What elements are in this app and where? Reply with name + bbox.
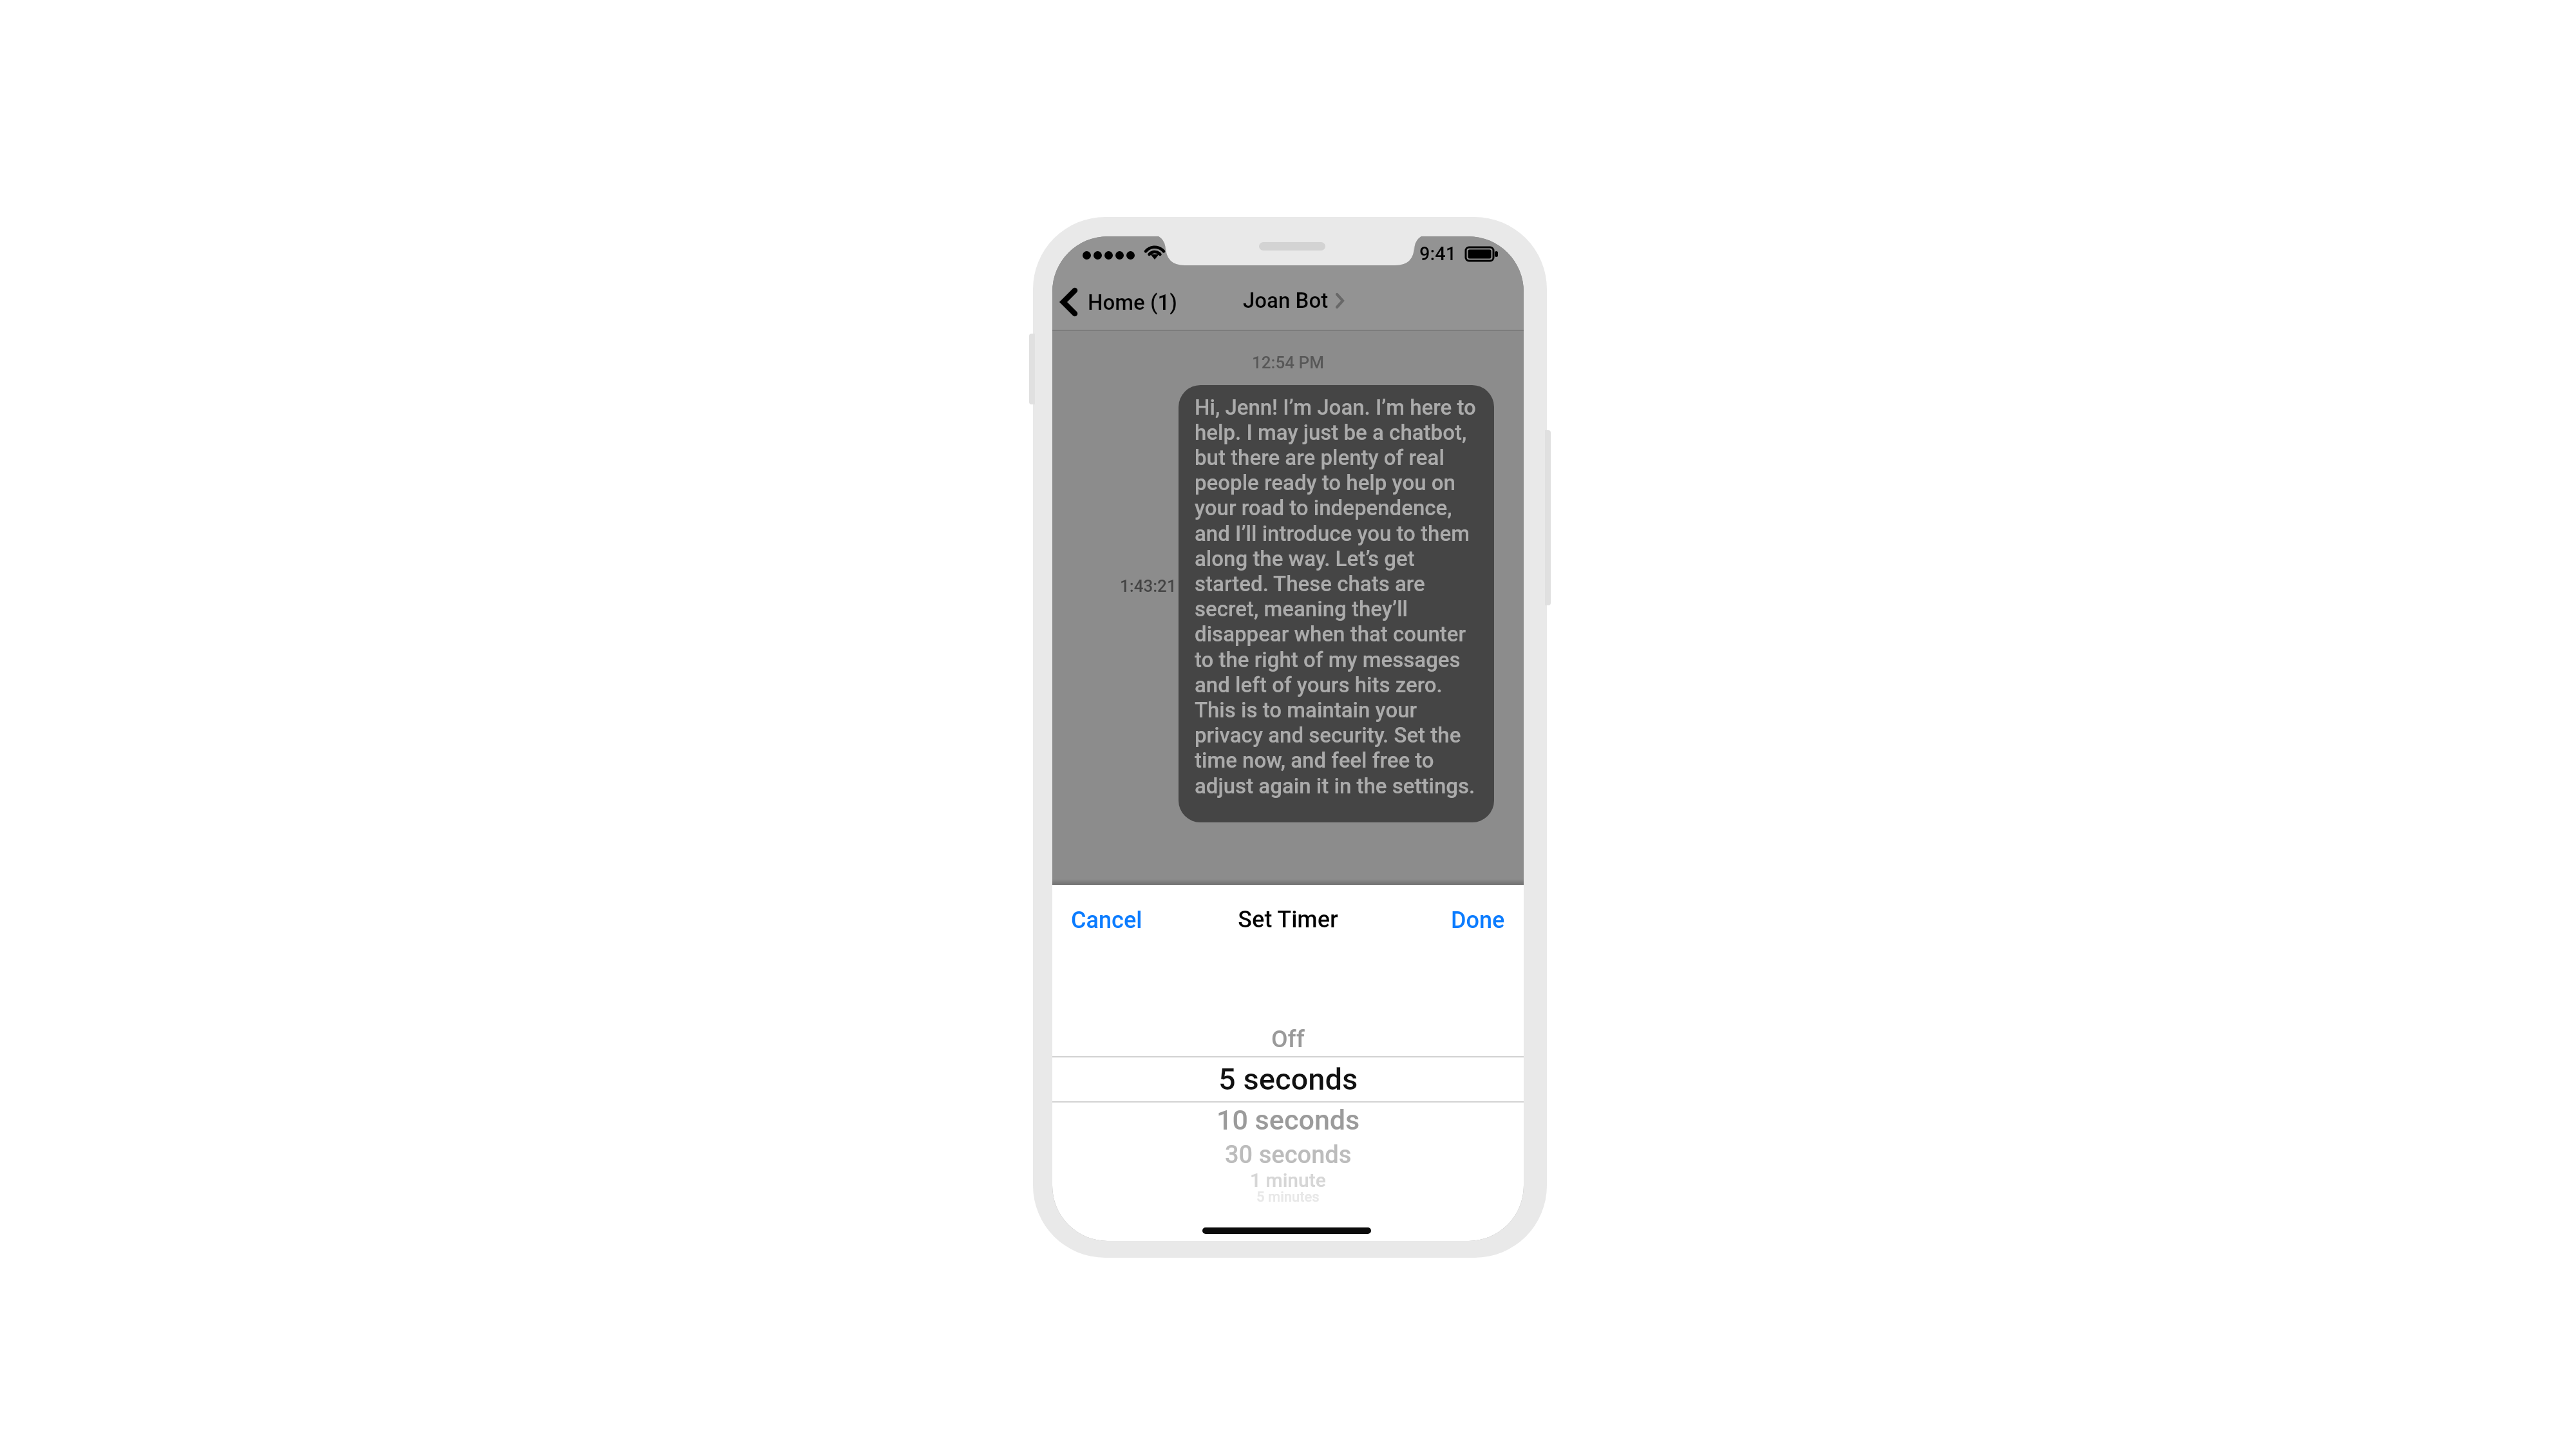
staticText: time now, and feel free to bbox=[1195, 748, 1434, 773]
staticText: privacy and security. Set the bbox=[1195, 723, 1461, 748]
staticText: Joan Bot bbox=[1243, 288, 1329, 313]
staticText: 12:54 PM bbox=[1052, 353, 1524, 372]
staticText: 5 minutes bbox=[1256, 1189, 1320, 1206]
staticText: adjust again it in the settings. bbox=[1195, 773, 1475, 799]
button[interactable]: Hi, Jenn! I’m Joan. I’m here to bbox=[1179, 385, 1494, 822]
button[interactable]: 10 seconds bbox=[1052, 1103, 1524, 1137]
staticText: 9:41 bbox=[1419, 243, 1457, 265]
other: Back bbox=[1060, 288, 1077, 316]
staticText: Done bbox=[1451, 907, 1505, 934]
staticText: Home (1) bbox=[1088, 290, 1177, 315]
staticText: 30 seconds bbox=[1225, 1141, 1352, 1170]
staticText: started. These chats are bbox=[1195, 571, 1425, 596]
button[interactable]: Cancel bbox=[1063, 899, 1150, 942]
staticText: and left of yours hits zero. bbox=[1195, 672, 1443, 697]
staticText: 5 seconds bbox=[1218, 1061, 1358, 1097]
staticText: but there are plenty of real bbox=[1195, 445, 1444, 470]
staticText: help. I may just be a chatbot, bbox=[1195, 420, 1467, 445]
staticText: Hi, Jenn! I’m Joan. I’m here to bbox=[1195, 395, 1476, 420]
button[interactable]: Joan Bot bbox=[1240, 285, 1347, 316]
staticText: and I’ll introduce you to them bbox=[1195, 521, 1470, 546]
other: Battery full bbox=[1466, 247, 1501, 261]
staticText: 10 seconds bbox=[1217, 1104, 1360, 1136]
staticText: along the way. Let’s get bbox=[1195, 546, 1415, 571]
staticText: disappear when that counter bbox=[1195, 621, 1466, 647]
staticText: people ready to help you on bbox=[1195, 470, 1455, 495]
staticText: 1 minute bbox=[1250, 1169, 1326, 1191]
staticText: 1:43:21 bbox=[1120, 576, 1177, 596]
staticText: Cancel bbox=[1071, 907, 1142, 934]
staticText: This is to maintain your bbox=[1195, 697, 1417, 723]
other: Wi-Fi bbox=[1142, 247, 1167, 260]
staticText: secret, meaning they’ll bbox=[1195, 596, 1408, 621]
button[interactable]: 5 minutes bbox=[1052, 1189, 1524, 1206]
button[interactable]: Done bbox=[1443, 899, 1513, 942]
staticText: Set Timer bbox=[1052, 906, 1524, 933]
staticText: to the right of my messages bbox=[1195, 647, 1461, 672]
staticText: your road to independence, bbox=[1195, 495, 1452, 520]
button[interactable]: Off bbox=[1052, 1024, 1524, 1054]
button[interactable]: 30 seconds bbox=[1052, 1140, 1524, 1170]
button[interactable]: 5 seconds bbox=[1052, 1060, 1524, 1097]
button[interactable]: Back bbox=[1052, 285, 1185, 320]
button[interactable]: 1 minute bbox=[1052, 1168, 1524, 1191]
staticText: Off bbox=[1271, 1025, 1305, 1053]
